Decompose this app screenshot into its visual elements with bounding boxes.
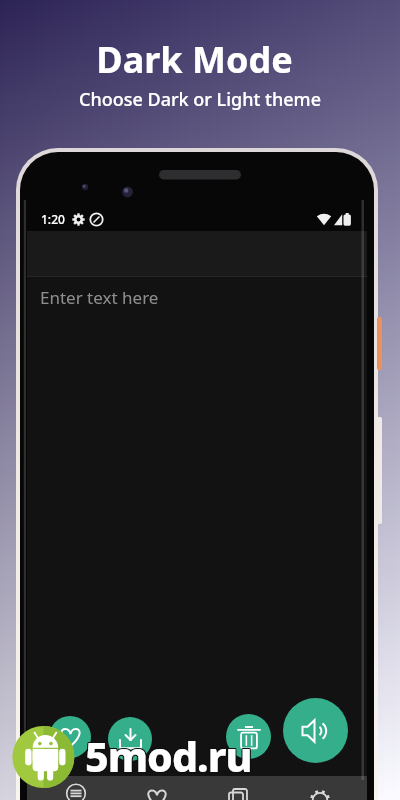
staticText: Choose Dark or Light theme [79,87,321,112]
staticText: 5mod.ru [85,727,252,783]
staticText: 1:20 [41,211,65,227]
button[interactable] [108,717,152,761]
staticText: 5mod.ru [85,728,252,784]
staticText: Dark Mode [96,35,293,84]
button[interactable] [288,776,352,800]
button[interactable] [125,776,189,800]
staticText: 5mod.ru [86,729,253,785]
button[interactable] [226,714,271,759]
button[interactable] [283,698,348,763]
staticText: 5mod.ru [84,728,251,784]
button[interactable]: Enter text here [27,277,367,317]
staticText: 5mod.ru [84,729,251,785]
staticText: 5mod.ru [86,728,253,784]
staticText: 5mod.ru [84,727,251,783]
button[interactable] [206,776,270,800]
staticText: 5mod.ru [85,729,252,785]
button[interactable] [27,776,367,800]
button[interactable] [49,716,91,758]
staticText: 5mod.ru [86,727,253,783]
button[interactable] [44,776,108,800]
staticText: Enter text here [40,286,159,309]
